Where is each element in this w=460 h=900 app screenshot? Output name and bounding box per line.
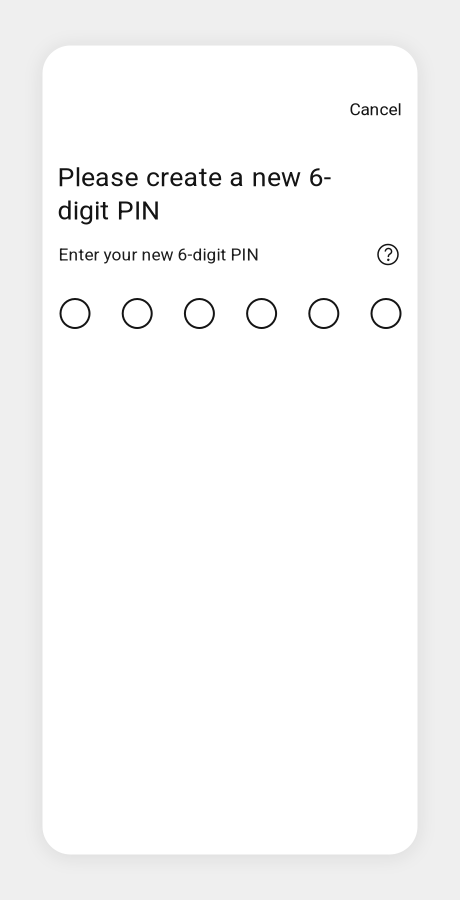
staticText: Enter your new 6-digit PIN bbox=[58, 244, 258, 265]
button[interactable]: Help bbox=[367, 240, 417, 269]
staticText: Please create a new 6- digit PIN bbox=[57, 161, 331, 226]
button[interactable]: Cancel bbox=[333, 90, 417, 128]
staticText: Cancel bbox=[349, 99, 401, 119]
button[interactable]: Enter your new 6-digit PIN bbox=[60, 299, 400, 328]
